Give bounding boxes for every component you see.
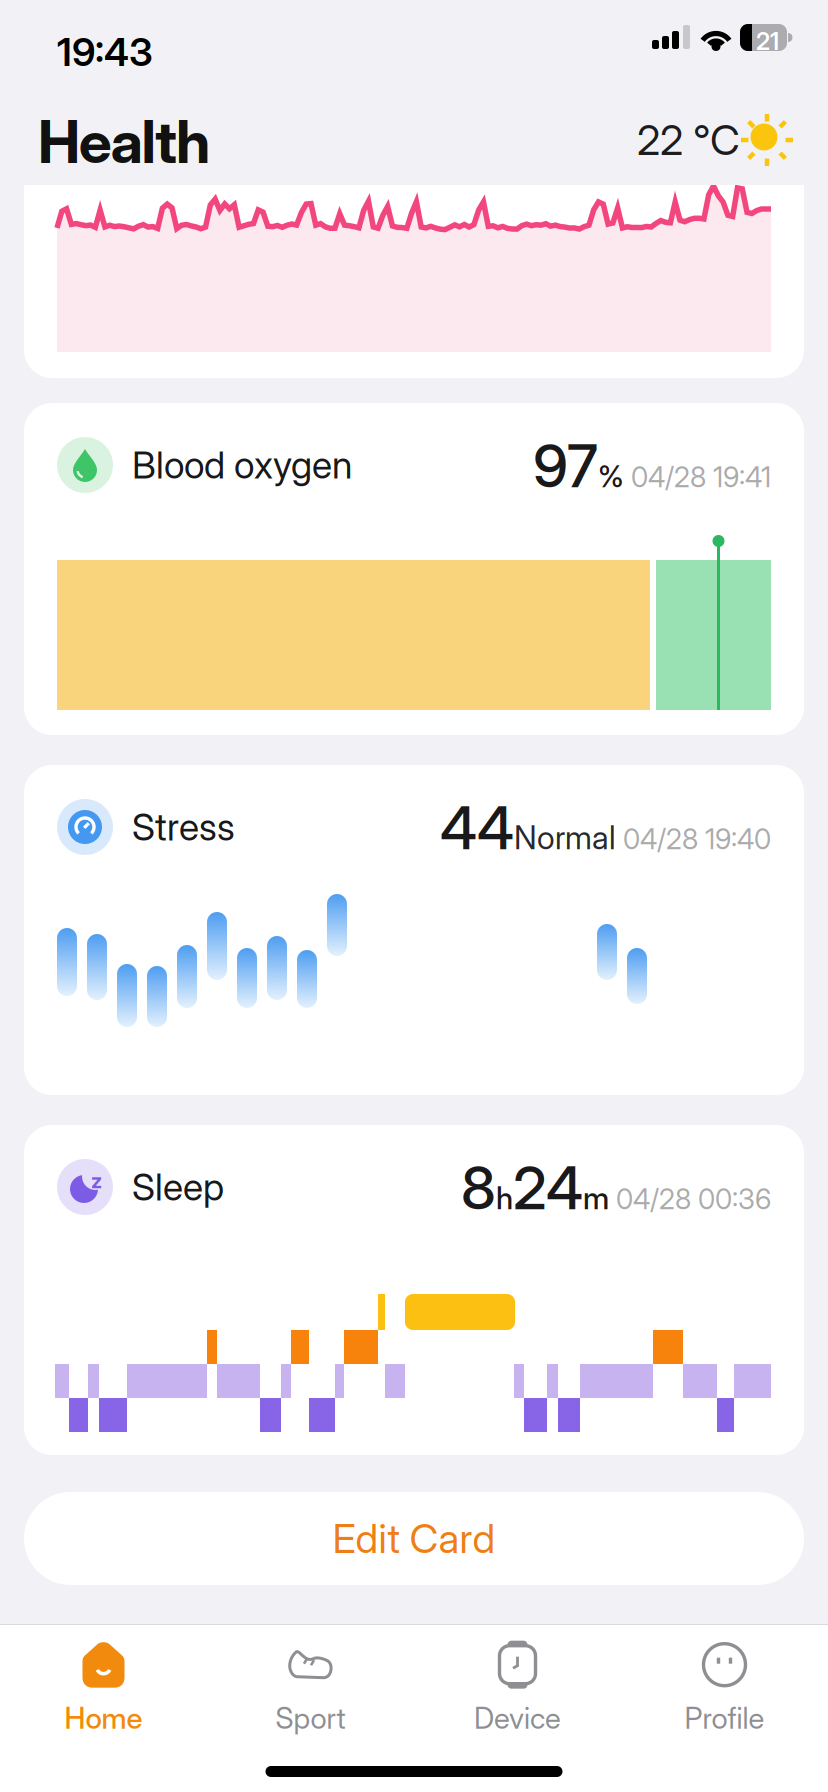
staticText: 19:43 xyxy=(57,29,153,75)
staticText: 97 xyxy=(533,431,598,501)
staticText: Blood oxygen xyxy=(132,443,352,487)
button[interactable]: Sport xyxy=(220,1633,400,1743)
staticText: 22 °C xyxy=(637,116,740,164)
staticText: 44 xyxy=(440,793,514,863)
button[interactable]: Blood oxygen xyxy=(24,403,804,735)
button[interactable]: Edit Card xyxy=(24,1492,804,1585)
button[interactable]: z xyxy=(24,1125,804,1455)
button[interactable]: Device xyxy=(427,1633,607,1743)
staticText: z xyxy=(91,1168,102,1193)
staticText: 04/28 19:40 xyxy=(616,823,771,856)
staticText: 8 xyxy=(461,1153,496,1223)
staticText: 04/28 19:41 xyxy=(624,461,771,494)
staticText: Normal xyxy=(514,819,616,857)
staticText: Home xyxy=(64,1701,142,1735)
staticText: 21 xyxy=(756,27,779,55)
staticText: Health xyxy=(38,107,210,176)
staticText: Profile xyxy=(684,1701,764,1735)
staticText: 24 xyxy=(513,1153,583,1223)
button[interactable]: Stress xyxy=(24,765,804,1095)
staticText: Edit Card xyxy=(332,1515,495,1562)
staticText: Sleep xyxy=(132,1165,224,1209)
staticText: Stress xyxy=(132,805,235,849)
button[interactable]: Profile xyxy=(634,1633,814,1743)
button[interactable]: Home xyxy=(13,1633,193,1743)
staticText: 04/28 00:36 xyxy=(609,1183,771,1216)
staticText: % xyxy=(598,459,624,494)
staticText: h xyxy=(496,1180,513,1216)
staticText: Sport xyxy=(275,1701,345,1735)
button[interactable]: Weather xyxy=(637,113,794,167)
staticText: Device xyxy=(474,1701,561,1735)
staticText: m xyxy=(583,1180,609,1216)
